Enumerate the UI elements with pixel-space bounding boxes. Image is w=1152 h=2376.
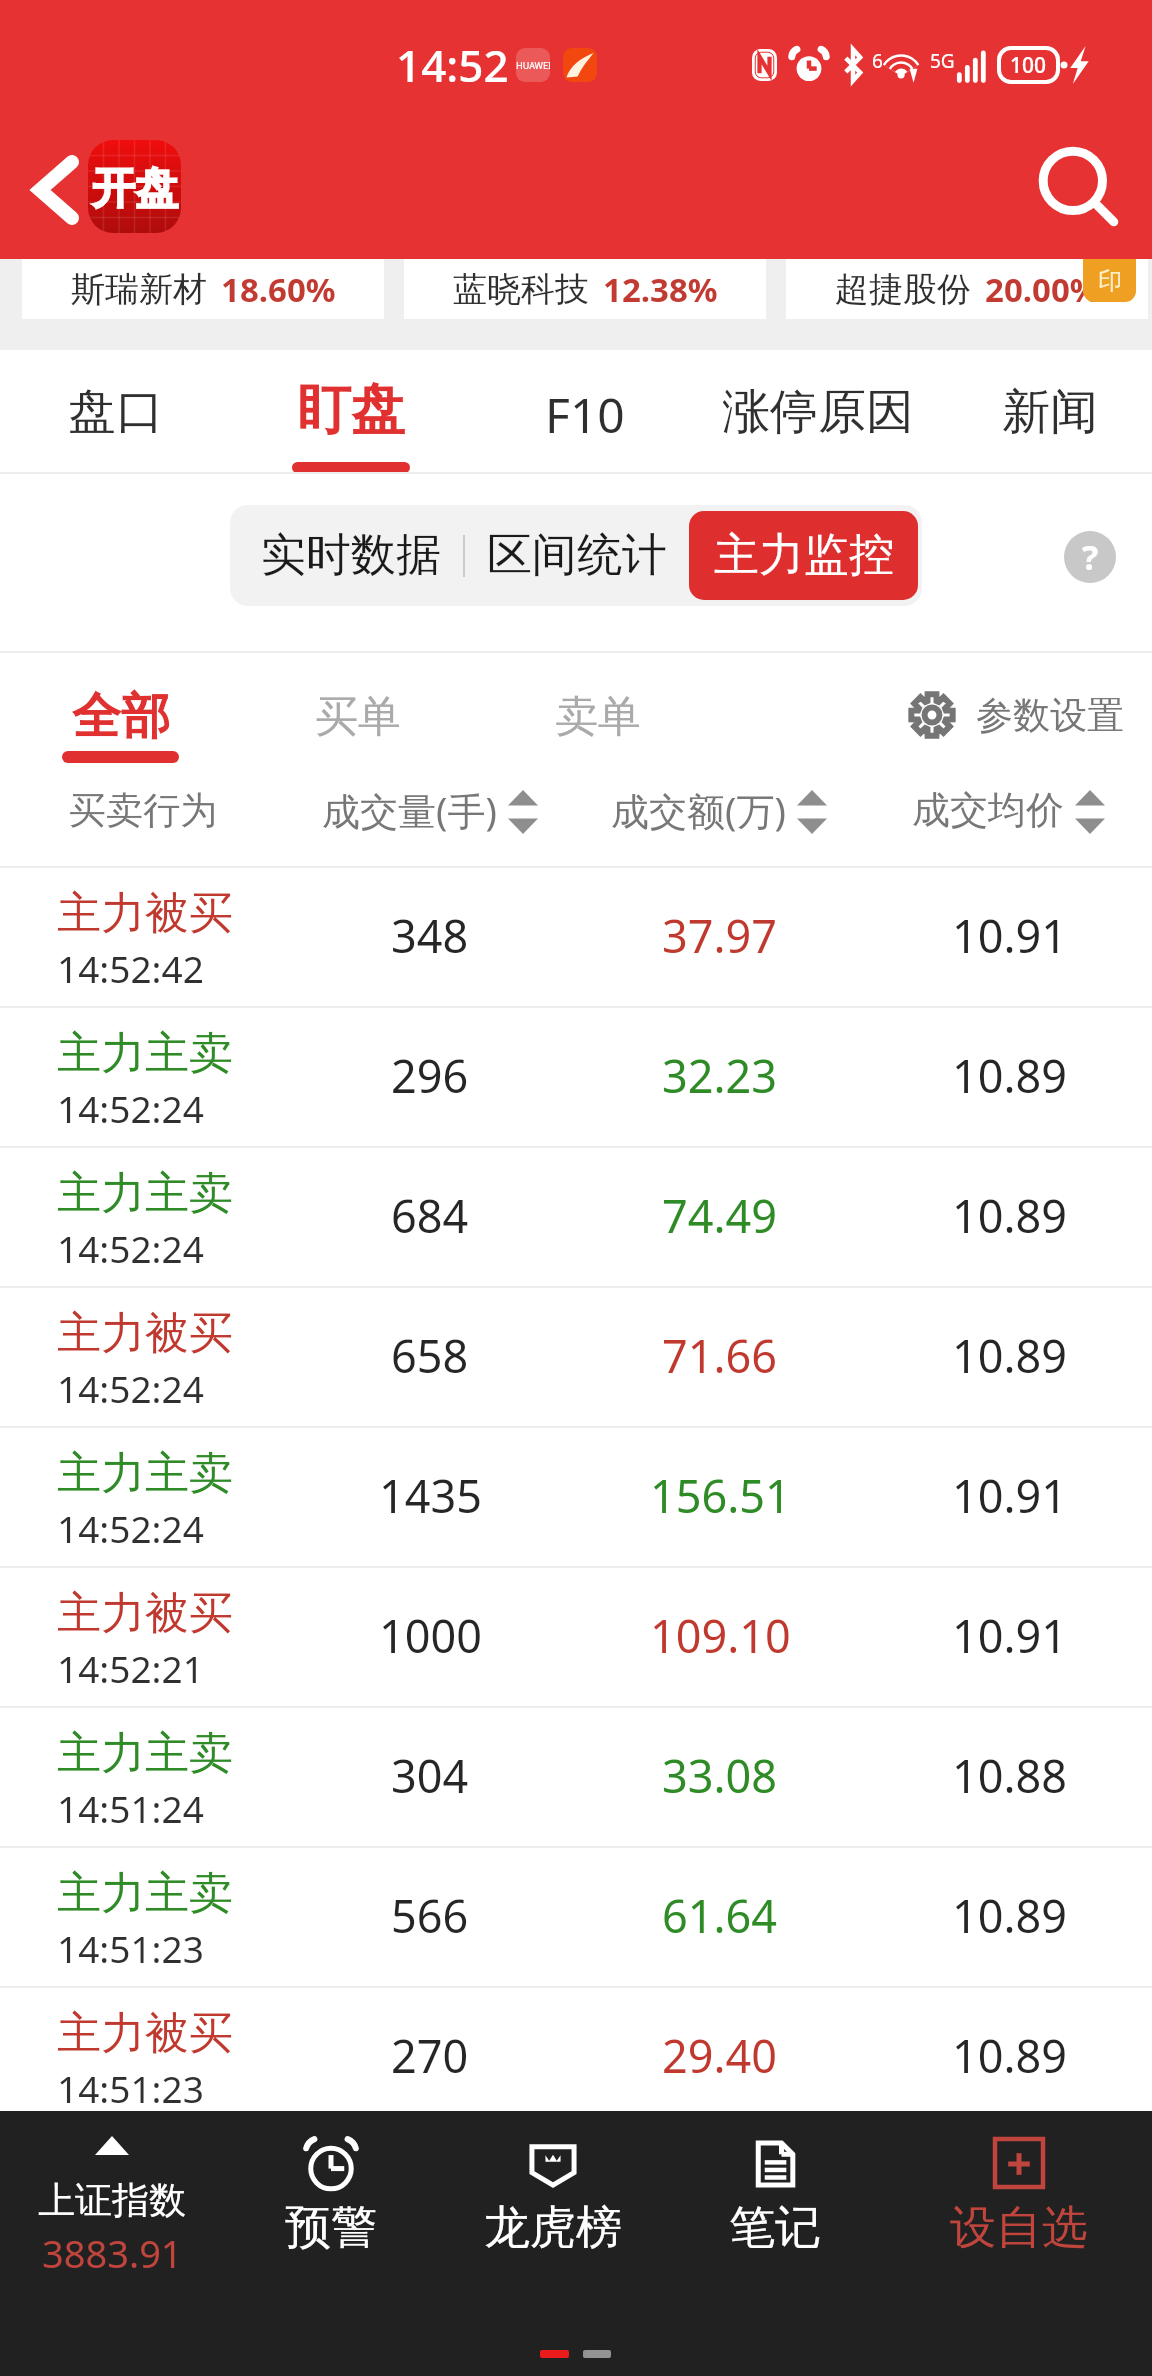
staticText: 684 — [391, 1185, 469, 1246]
staticText: 71.66 — [662, 1325, 778, 1386]
staticText: 29.40 — [662, 2025, 778, 2086]
staticText: 10.91 — [952, 1605, 1068, 1666]
button[interactable]: 预警 — [231, 2111, 431, 2291]
button[interactable]: 主力主卖 — [0, 1848, 1152, 1988]
staticText: 主力被买 — [57, 2006, 233, 2061]
staticText: 区间统计 — [487, 527, 667, 584]
staticText: 设自选 — [950, 2199, 1088, 2257]
staticText: 14:52 — [396, 35, 509, 95]
button[interactable]: 主力被买 — [0, 1988, 1152, 2128]
staticText: 主力监控 — [714, 527, 894, 584]
button[interactable]: 设自选 — [919, 2111, 1119, 2291]
staticText: 18.60% — [221, 267, 336, 312]
staticText: 156.51 — [650, 1465, 791, 1526]
staticText: 笔记 — [729, 2199, 821, 2257]
staticText: 盘口 — [68, 382, 164, 442]
staticText: 10.89 — [952, 1325, 1068, 1386]
staticText: 涨停原因 — [722, 382, 914, 442]
staticText: 10.89 — [952, 2025, 1068, 2086]
staticText: 566 — [391, 1885, 469, 1946]
staticText: 10.91 — [952, 905, 1068, 966]
staticText: 主力主卖 — [57, 1726, 233, 1781]
button[interactable]: 开盘 — [88, 140, 181, 233]
button[interactable]: Search — [1028, 136, 1128, 236]
button[interactable]: 涨停原因 — [708, 350, 928, 474]
button[interactable]: 蓝晓科技 — [404, 259, 766, 319]
staticText: 14:51:23 — [57, 2063, 204, 2113]
staticText: 270 — [391, 2025, 469, 2086]
button[interactable]: 主力被买 — [0, 868, 1152, 1008]
staticText: 109.10 — [650, 1605, 791, 1666]
staticText: 10.88 — [952, 1745, 1068, 1806]
staticText: 20.00% — [985, 267, 1100, 312]
staticText: ? — [1082, 534, 1099, 580]
staticText: 37.97 — [662, 905, 778, 966]
staticText: 6 — [872, 48, 883, 74]
staticText: 10.89 — [952, 1885, 1068, 1946]
staticText: 10.89 — [952, 1045, 1068, 1106]
staticText: 超捷股份 — [835, 268, 971, 311]
staticText: 斯瑞新材 — [71, 268, 207, 311]
staticText: 14:52:24 — [57, 1363, 204, 1413]
button[interactable]: 区间统计 — [465, 505, 689, 606]
staticText: 预警 — [285, 2199, 377, 2257]
staticText: 1000 — [379, 1605, 482, 1666]
button[interactable]: 笔记 — [675, 2111, 875, 2291]
staticText: 卖单 — [555, 690, 641, 744]
button[interactable]: 成交量(手) — [300, 771, 560, 868]
button[interactable]: 实时数据 — [234, 505, 468, 606]
staticText: 658 — [391, 1325, 469, 1386]
staticText: 主力主卖 — [57, 1446, 233, 1501]
button[interactable]: 主力被买 — [0, 1288, 1152, 1428]
button[interactable]: 主力主卖 — [0, 1708, 1152, 1848]
button[interactable]: 主力主卖 — [0, 1428, 1152, 1568]
button[interactable]: 超捷股份 — [786, 259, 1148, 319]
staticText: 主力主卖 — [57, 1866, 233, 1921]
button[interactable]: 主力主卖 — [0, 1148, 1152, 1288]
staticText: 盯盘 — [297, 376, 405, 444]
button[interactable]: 斯瑞新材 — [22, 259, 384, 319]
staticText: 14:52:21 — [57, 1643, 204, 1693]
staticText: 14:52:24 — [57, 1223, 204, 1273]
button[interactable]: Back — [8, 143, 98, 237]
staticText: 主力主卖 — [57, 1166, 233, 1221]
button[interactable]: 参数设置 — [908, 653, 1138, 771]
staticText: 蓝晓科技 — [453, 268, 589, 311]
button[interactable]: Help — [1064, 531, 1116, 583]
button[interactable]: 盘口 — [6, 350, 226, 474]
staticText: 主力被买 — [57, 1586, 233, 1641]
button[interactable]: F10 — [475, 350, 695, 474]
staticText: 主力被买 — [57, 886, 233, 941]
staticText: 10.89 — [952, 1185, 1068, 1246]
staticText: HUAWEI — [516, 59, 550, 71]
staticText: 14:52:24 — [57, 1083, 204, 1133]
staticText: 33.08 — [662, 1745, 778, 1806]
staticText: 成交量(手) — [322, 784, 497, 836]
button[interactable]: 主力被买 — [0, 1568, 1152, 1708]
staticText: 买单 — [315, 690, 401, 744]
staticText: F10 — [545, 382, 625, 447]
button[interactable]: 主力监控 — [689, 511, 918, 600]
button[interactable]: 卖单 — [498, 653, 698, 771]
staticText: 1435 — [379, 1465, 482, 1526]
staticText: 全部 — [72, 686, 170, 748]
button[interactable]: 龙虎榜 — [453, 2111, 653, 2291]
staticText: 主力被买 — [57, 1306, 233, 1361]
staticText: 成交均价 — [912, 786, 1064, 834]
staticText: 实时数据 — [261, 527, 441, 584]
staticText: 新闻 — [1002, 382, 1098, 442]
staticText: 348 — [391, 905, 469, 966]
button[interactable]: 新闻 — [940, 350, 1152, 474]
staticText: 开盘 — [92, 162, 178, 216]
button[interactable]: 上证指数 — [12, 2111, 212, 2291]
staticText: 14:51:24 — [57, 1783, 204, 1833]
button[interactable]: 买单 — [258, 653, 458, 771]
button[interactable]: 成交额(万) — [589, 771, 849, 868]
staticText: 龙虎榜 — [484, 2199, 622, 2257]
button[interactable]: 全部 — [20, 653, 220, 771]
button[interactable]: 成交均价 — [878, 771, 1138, 868]
button[interactable]: 主力主卖 — [0, 1008, 1152, 1148]
staticText: 74.49 — [662, 1185, 778, 1246]
button[interactable]: 盯盘 — [241, 350, 461, 474]
staticText: 印 — [1098, 266, 1122, 296]
